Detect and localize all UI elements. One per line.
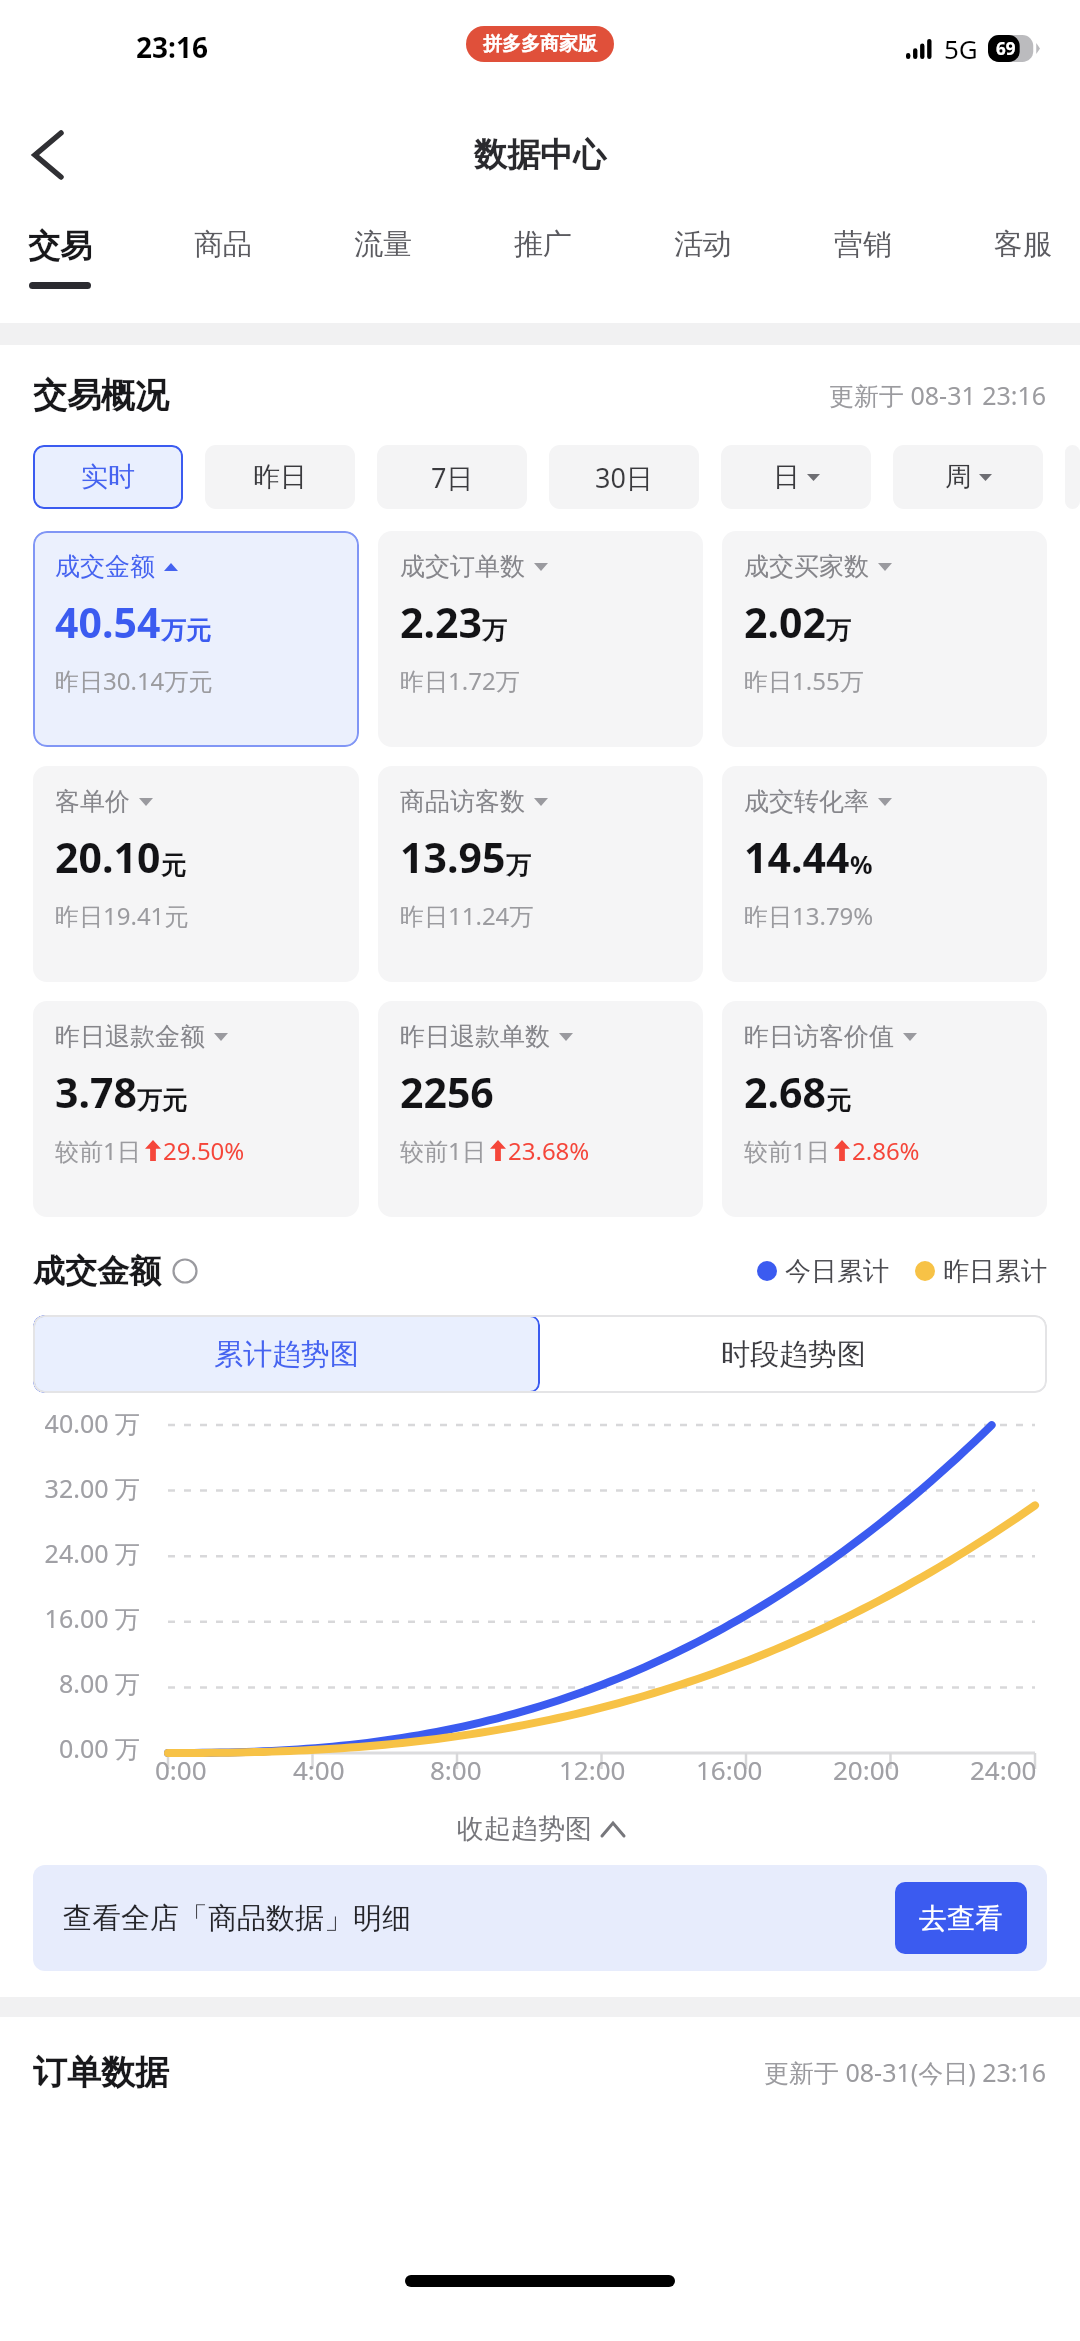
staticText: 16:00 [696, 1752, 763, 1787]
staticText: 较前1日 [744, 1134, 830, 1167]
staticText: 24.00 万 [10, 1536, 140, 1570]
staticText: 4:00 [293, 1752, 345, 1787]
staticText: 元 [826, 1085, 851, 1116]
button[interactable]: Help [171, 1257, 199, 1285]
staticText: 较前1日 [400, 1134, 486, 1167]
staticText: 16.00 万 [10, 1601, 140, 1635]
button[interactable]: 时段趋势图 [540, 1315, 1047, 1393]
staticText: 昨日1.72万 [400, 664, 520, 697]
staticText: 40.00 万 [10, 1406, 140, 1440]
staticText: 12:00 [559, 1752, 626, 1787]
staticText: 23.68% [508, 1134, 590, 1167]
staticText: 昨日退款单数 [400, 1021, 550, 1052]
staticText: 32.00 万 [10, 1471, 140, 1505]
button[interactable]: 成交金额 [33, 531, 359, 747]
staticText: 7日 [431, 459, 474, 496]
staticText: 时段趋势图 [721, 1336, 866, 1373]
staticText: 2.23 [400, 594, 482, 650]
staticText: 万 [826, 615, 851, 646]
staticText: 20.10 [55, 829, 161, 885]
button[interactable]: 查看全店「商品数据」明细 [33, 1865, 1047, 1971]
staticText: 周 [945, 460, 972, 494]
button[interactable]: 昨日退款金额 [33, 1001, 359, 1217]
staticText: 实时 [81, 460, 135, 494]
button[interactable]: 成交订单数 [378, 531, 703, 747]
staticText: 30日 [595, 459, 653, 496]
button[interactable]: 活动 [674, 210, 732, 323]
staticText: 0:00 [155, 1752, 207, 1787]
staticText: 0.00 万 [10, 1731, 140, 1765]
button[interactable]: 成交买家数 [722, 531, 1047, 747]
staticText: 客服 [994, 226, 1052, 263]
button[interactable]: 商品 [194, 210, 252, 323]
staticText: 29.50% [163, 1134, 245, 1167]
staticText: 活动 [674, 226, 732, 263]
staticText: 2256 [400, 1064, 494, 1120]
staticText: 查看全店「商品数据」明细 [63, 1900, 411, 1937]
staticText: 更新于 08-31 23:16 [829, 378, 1047, 412]
staticText: 8:00 [430, 1752, 482, 1787]
staticText: 更新于 08-31(今日) 23:16 [764, 2055, 1047, 2089]
staticText: 较前1日 [55, 1134, 141, 1167]
button[interactable]: Back [0, 107, 96, 203]
staticText: 收起趋势图 [457, 1812, 592, 1846]
staticText: 5G [944, 31, 978, 66]
button[interactable]: 昨日 [205, 445, 355, 509]
button[interactable]: 营销 [834, 210, 892, 323]
staticText: 商品访客数 [400, 786, 525, 817]
staticText: 昨日11.24万 [400, 899, 534, 932]
button[interactable]: 成交转化率 [722, 766, 1047, 982]
button[interactable]: 客单价 [33, 766, 359, 982]
staticText: 推广 [514, 226, 572, 263]
button[interactable]: 实时 [33, 445, 183, 509]
staticText: 成交金额 [33, 1251, 161, 1291]
staticText: 2.86% [852, 1134, 920, 1167]
staticText: 24:00 [970, 1752, 1037, 1787]
staticText: 去查看 [919, 1901, 1003, 1936]
staticText: 昨日退款金额 [55, 1021, 205, 1052]
staticText: 交易 [28, 226, 92, 266]
staticText: 20:00 [833, 1752, 900, 1787]
button[interactable]: 30日 [549, 445, 699, 509]
staticText: 昨日 [253, 460, 307, 494]
button[interactable]: 昨日访客价值 [722, 1001, 1047, 1217]
staticText: 客单价 [55, 786, 130, 817]
staticText: 元 [161, 850, 186, 881]
staticText: 流量 [354, 226, 412, 263]
button[interactable]: 推广 [514, 210, 572, 323]
staticText: 2.68 [744, 1064, 826, 1120]
staticText: 营销 [834, 226, 892, 263]
staticText: 昨日累计 [943, 1255, 1047, 1288]
button[interactable]: 客服 [994, 210, 1052, 323]
staticText: 昨日访客价值 [744, 1021, 894, 1052]
button[interactable]: 去查看 [895, 1882, 1027, 1954]
button[interactable]: 收起趋势图 [0, 1793, 1080, 1865]
button[interactable]: 流量 [354, 210, 412, 323]
staticText: % [850, 847, 873, 881]
button[interactable]: 周 [893, 445, 1043, 509]
staticText: 万元 [161, 615, 211, 646]
staticText: 成交订单数 [400, 551, 525, 582]
staticText: 昨日30.14万元 [55, 664, 213, 697]
button[interactable]: 交易 [28, 210, 92, 323]
staticText: 昨日1.55万 [744, 664, 864, 697]
button[interactable]: 累计趋势图 [33, 1315, 540, 1393]
staticText: 累计趋势图 [214, 1336, 359, 1373]
staticText: 今日累计 [785, 1255, 889, 1288]
staticText: 8.00 万 [10, 1666, 140, 1700]
staticText: 订单数据 [33, 2051, 169, 2094]
button[interactable]: 商品访客数 [378, 766, 703, 982]
staticText: 万 [506, 850, 531, 881]
staticText: 69 [996, 37, 1016, 60]
staticText: 万元 [137, 1085, 187, 1116]
staticText: 13.95 [400, 829, 506, 885]
staticText: 数据中心 [474, 134, 606, 176]
staticText: 成交转化率 [744, 786, 869, 817]
button[interactable]: 昨日退款单数 [378, 1001, 703, 1217]
button[interactable]: 日 [721, 445, 871, 509]
staticText: 14.44 [744, 829, 850, 885]
staticText: 交易概况 [33, 374, 169, 417]
staticText: 23:16 [136, 28, 208, 66]
button[interactable]: 7日 [377, 445, 527, 509]
